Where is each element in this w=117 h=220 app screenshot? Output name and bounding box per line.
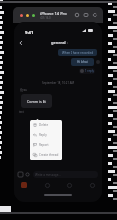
button[interactable]: Rotate	[92, 12, 98, 18]
staticText: @you	[20, 88, 27, 92]
button[interactable]: Comm is lit	[21, 94, 52, 108]
staticText: Reply	[39, 133, 47, 137]
staticText: When I have recorded	[62, 51, 93, 55]
button[interactable]: Back	[17, 39, 25, 47]
staticText: Delete	[39, 123, 49, 127]
staticText: Write a message...	[35, 173, 61, 177]
button[interactable]: Media	[21, 182, 27, 188]
button[interactable]: 1 reply	[80, 68, 94, 74]
button[interactable]: Camera	[25, 172, 30, 177]
button[interactable]: Create thread	[30, 150, 62, 160]
button[interactable]	[32, 14, 35, 17]
button[interactable]: Report	[30, 140, 62, 150]
staticText: ›	[67, 40, 69, 45]
button[interactable]: Write a message...	[35, 171, 96, 178]
button[interactable]: Reply	[30, 130, 62, 140]
button[interactable]: Hi bhai	[71, 58, 94, 66]
staticText: Comm is lit	[27, 99, 46, 104]
staticText: general	[51, 40, 66, 45]
staticText: 1 reply	[85, 69, 94, 73]
staticText: Hi bhai	[77, 60, 88, 64]
button[interactable]: Sticker	[90, 183, 95, 188]
button[interactable]: Delete	[30, 120, 62, 130]
button[interactable]	[26, 14, 29, 17]
button[interactable]: When I have recorded	[58, 49, 97, 56]
staticText: Create thread	[39, 153, 59, 157]
staticText: iPhone 14 Pro	[40, 11, 67, 16]
button[interactable]	[20, 14, 23, 17]
button[interactable]: Screenshot	[83, 12, 89, 18]
button[interactable]: general	[51, 40, 69, 45]
staticText: 9:41	[25, 30, 34, 36]
staticText: Report	[39, 143, 49, 147]
staticText: iOS 16.0	[40, 16, 51, 20]
staticText: September 18, 10:21 AM	[42, 81, 75, 85]
staticText: text	[19, 110, 24, 114]
button[interactable]: GIF	[67, 183, 72, 188]
button[interactable]: Attach	[18, 172, 23, 177]
button[interactable]: Home	[74, 12, 80, 18]
button[interactable]: Emoji	[45, 183, 50, 188]
